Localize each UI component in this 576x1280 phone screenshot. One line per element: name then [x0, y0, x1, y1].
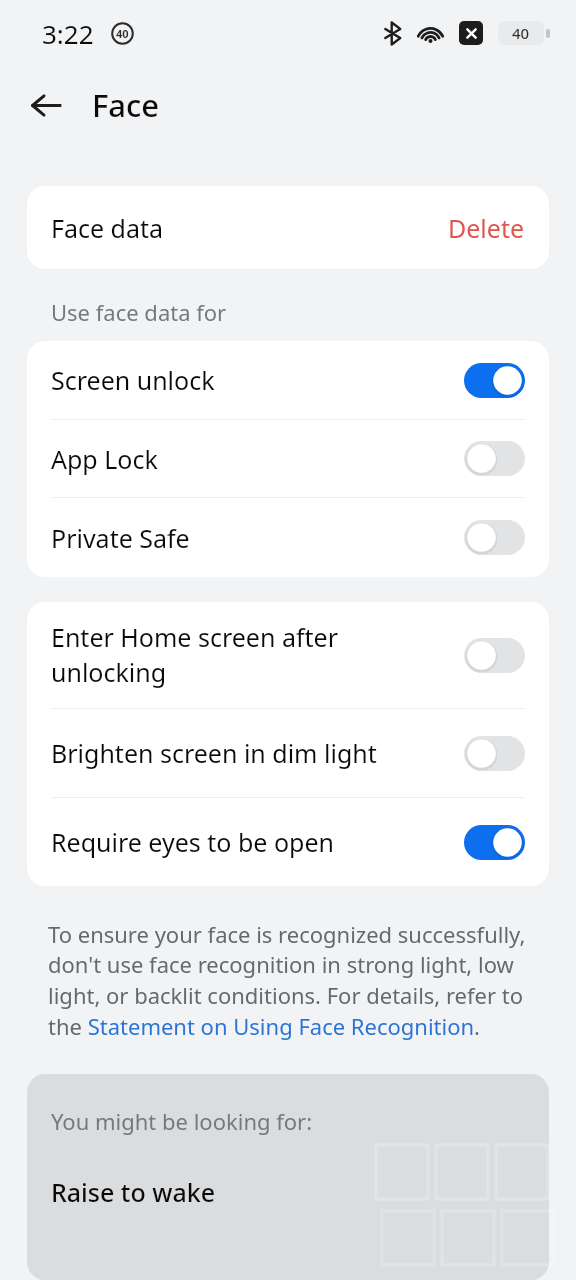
staticText: Screen unlock [51, 363, 215, 397]
button[interactable]: Raise to wake [51, 1175, 525, 1209]
staticText: Brighten screen in dim light [51, 736, 377, 770]
staticText: App Lock [51, 442, 158, 476]
staticText: Raise to wake [51, 1175, 216, 1209]
staticText: Require eyes to be open [51, 825, 334, 859]
staticText: Face [92, 84, 160, 126]
button[interactable]: On [464, 363, 525, 398]
staticText: 40 [512, 23, 530, 43]
button[interactable]: Back [22, 81, 70, 129]
button[interactable]: Brighten screen in dim light [27, 709, 549, 797]
button[interactable]: Enter Home screen after unlocking [27, 602, 549, 708]
staticText: 40 [116, 26, 129, 41]
button[interactable]: Off [464, 736, 525, 771]
button[interactable]: Off [464, 520, 525, 555]
button[interactable]: Screen unlock [27, 341, 549, 419]
button[interactable]: App Lock [27, 420, 549, 497]
button[interactable]: Off [464, 638, 525, 673]
button[interactable]: Require eyes to be open [27, 798, 549, 886]
staticText: You might be looking for: [51, 1106, 313, 1136]
button[interactable]: Off [464, 441, 525, 476]
staticText: Delete [448, 211, 525, 245]
staticText: Use face data for [51, 297, 227, 327]
staticText: 3:22 [42, 16, 94, 51]
staticText: Enter Home screen after unlocking [51, 620, 338, 690]
button[interactable]: Private Safe [27, 498, 549, 577]
staticText: Face data [51, 211, 164, 245]
button[interactable]: Face data [27, 186, 549, 269]
button[interactable]: On [464, 825, 525, 860]
staticText: Private Safe [51, 521, 190, 555]
staticText: To ensure your face is recognized succes… [48, 919, 538, 1042]
